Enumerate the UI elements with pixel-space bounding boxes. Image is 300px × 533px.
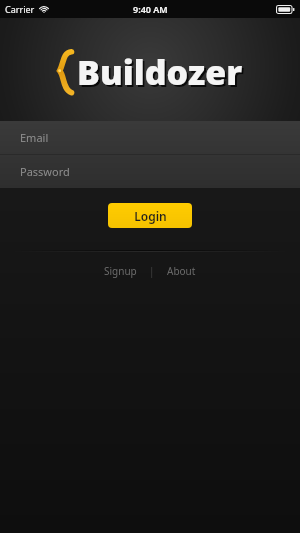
staticText: Carrier <box>5 3 35 15</box>
staticText: Email <box>20 130 49 145</box>
staticText: Buildozer <box>79 51 245 97</box>
staticText: Login <box>134 208 167 224</box>
staticText: 9:40 AM <box>133 3 168 15</box>
button[interactable]: Signup <box>96 260 145 282</box>
button[interactable]: About <box>159 260 204 282</box>
staticText: Signup <box>104 264 137 278</box>
button[interactable]: Password <box>0 155 300 188</box>
staticText: Password <box>20 164 70 179</box>
button[interactable]: Login <box>108 203 192 228</box>
staticText: Buildozer <box>77 49 243 95</box>
staticText: About <box>167 264 196 278</box>
button[interactable]: Email <box>0 121 300 154</box>
staticText: | <box>149 264 155 278</box>
